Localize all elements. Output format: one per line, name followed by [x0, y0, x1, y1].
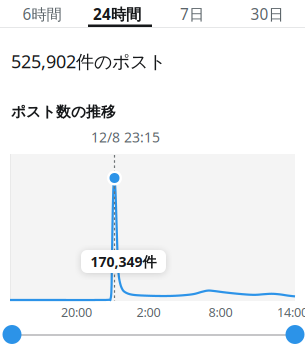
- staticText: 170,349件: [90, 252, 156, 271]
- button[interactable]: 30日: [229, 0, 304, 28]
- button[interactable]: Range end: [285, 325, 304, 344]
- button[interactable]: 24時間: [79, 0, 154, 28]
- button[interactable]: 6時間: [4, 0, 79, 28]
- staticText: 2:00: [136, 303, 160, 321]
- staticText: 6時間: [22, 4, 61, 24]
- staticText: 525,902件のポスト: [11, 49, 166, 73]
- staticText: 7日: [180, 4, 204, 24]
- staticText: 12/8 23:15: [91, 127, 160, 147]
- button[interactable]: 7日: [154, 0, 229, 28]
- button[interactable]: Range start: [2, 325, 21, 344]
- staticText: 30日: [250, 4, 283, 24]
- staticText: 20:00: [61, 303, 92, 321]
- staticText: 24時間: [93, 4, 141, 24]
- staticText: ポスト数の推移: [11, 102, 116, 121]
- staticText: 14:00: [277, 303, 305, 321]
- staticText: 8:00: [208, 303, 232, 321]
